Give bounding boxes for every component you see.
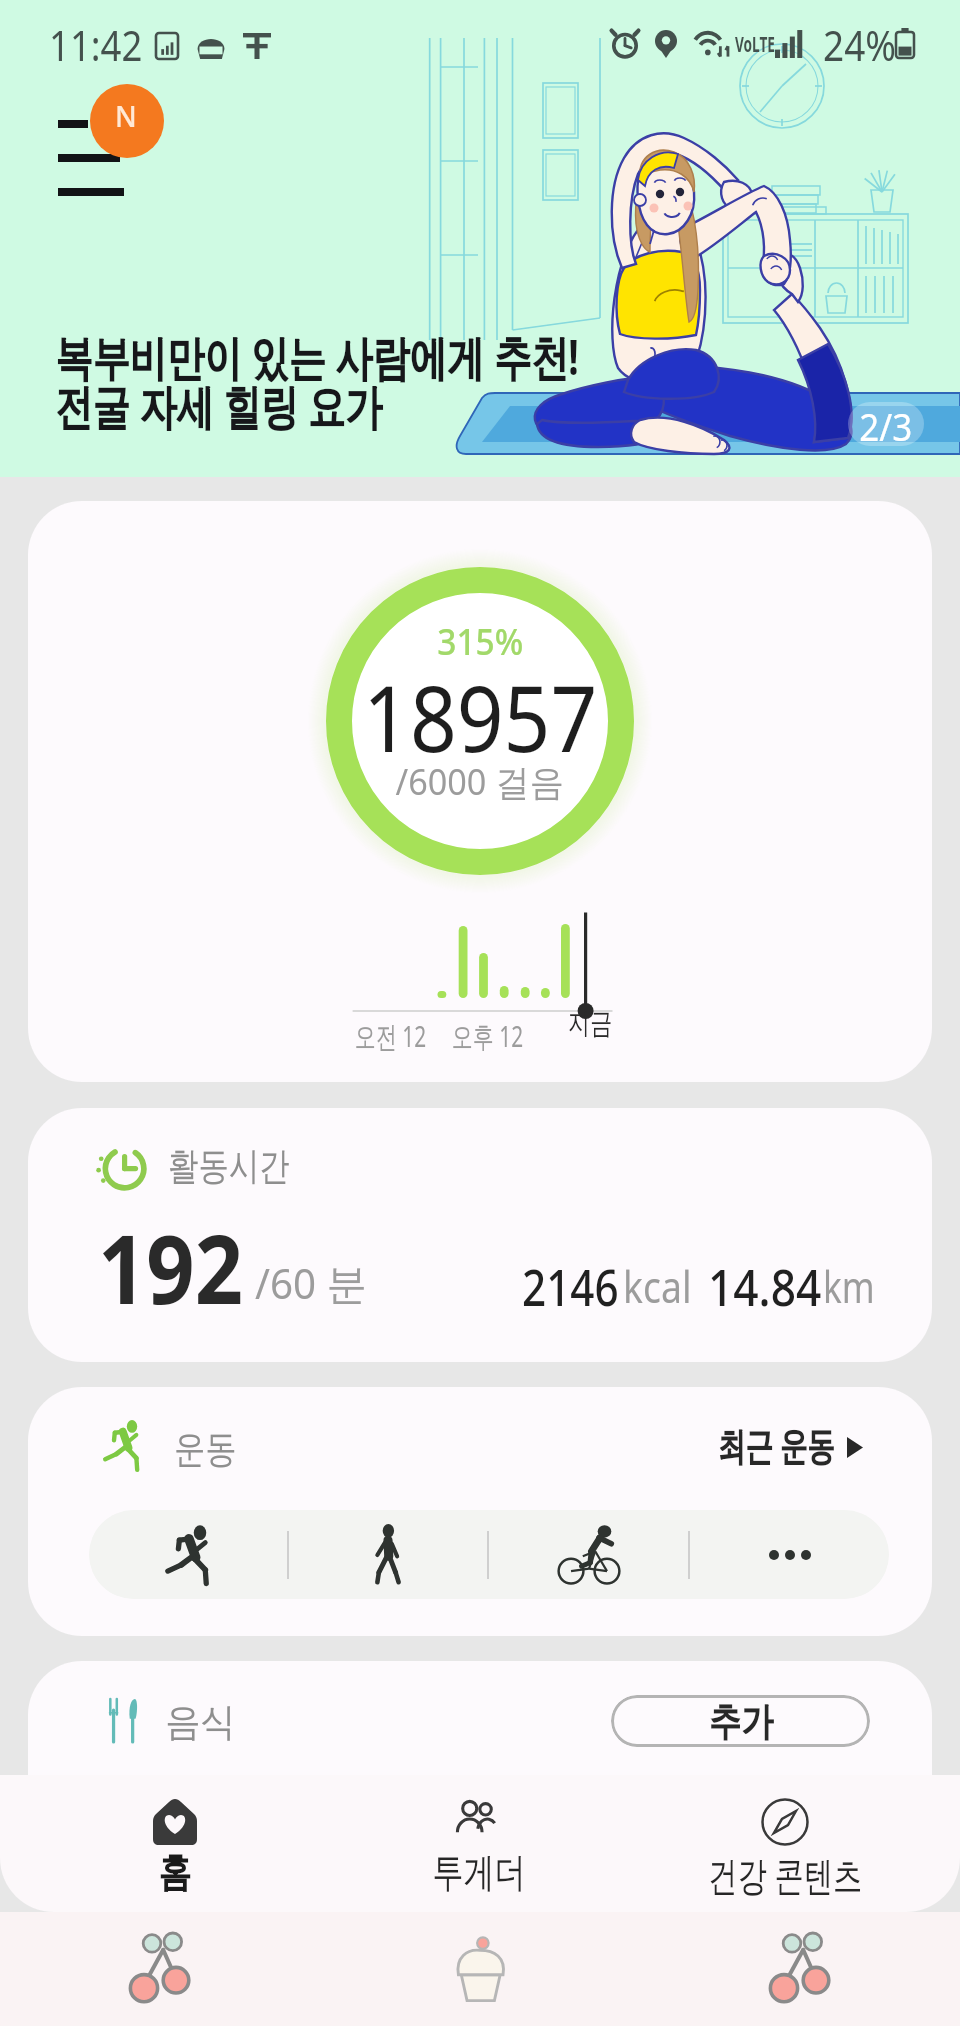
staticText: 24% xyxy=(823,16,896,73)
staticText: /6000 걸음 xyxy=(395,757,565,806)
staticText: N xyxy=(115,97,137,135)
staticText: 건강 콘텐츠 xyxy=(708,1847,862,1902)
staticText: 18957 xyxy=(363,655,598,779)
button[interactable]: 음식 xyxy=(28,1661,932,1909)
staticText: km xyxy=(823,1256,875,1316)
staticText: 추가 xyxy=(709,1697,773,1746)
staticText: 전굴 자세 힐링 요가 xyxy=(55,373,382,439)
staticText: 315% xyxy=(437,617,524,666)
staticText: 운동 xyxy=(174,1425,236,1473)
button[interactable]: 활동시간 xyxy=(28,1108,932,1362)
staticText: 오전 12 xyxy=(355,1016,426,1056)
button[interactable]: 건강 콘텐츠 xyxy=(640,1775,960,1912)
staticText: kcal xyxy=(623,1256,692,1316)
button[interactable]: 11:42 xyxy=(0,0,960,477)
button[interactable]: More exercises xyxy=(690,1510,889,1599)
button[interactable]: 투게더 xyxy=(320,1775,640,1912)
staticText: 홈 xyxy=(159,1847,191,1897)
staticText: 2146 xyxy=(522,1253,619,1321)
staticText: 활동시간 xyxy=(168,1142,290,1190)
staticText: 최근 운동 xyxy=(718,1418,835,1471)
staticText: 음식 xyxy=(165,1698,236,1746)
button[interactable]: Cycling xyxy=(489,1510,688,1599)
staticText: 2/3 xyxy=(859,402,913,444)
button[interactable]: Menu xyxy=(54,108,130,164)
staticText: 11:42 xyxy=(49,16,143,73)
staticText: VoLTE xyxy=(735,28,775,58)
staticText: 복부비만이 있는 사람에게 추천! xyxy=(55,324,579,390)
button[interactable]: 홈 xyxy=(0,1775,320,1912)
staticText: 14.84 xyxy=(708,1253,821,1321)
button[interactable] xyxy=(28,1387,932,1502)
staticText: /60 분 xyxy=(255,1254,367,1311)
button[interactable]: Walking xyxy=(289,1510,487,1599)
button[interactable]: 315% xyxy=(28,501,932,1082)
button[interactable]: Running xyxy=(89,1510,287,1599)
staticText: 지금 xyxy=(568,1005,612,1042)
staticText: 투게더 xyxy=(432,1847,526,1897)
staticText: 오후 12 xyxy=(452,1016,523,1056)
button[interactable]: 추가 xyxy=(611,1695,870,1747)
staticText: 192 xyxy=(98,1202,244,1331)
